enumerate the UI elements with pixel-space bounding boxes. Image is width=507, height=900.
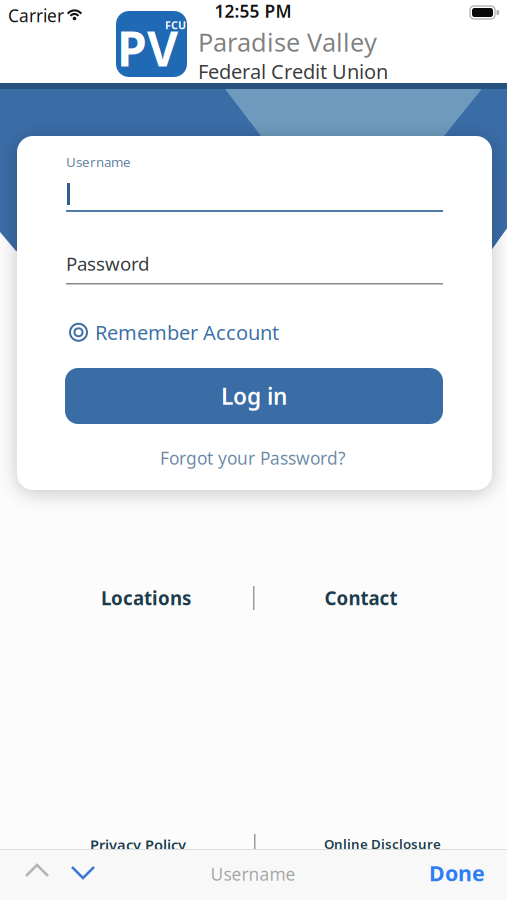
staticText: Carrier — [8, 4, 64, 27]
staticText: Forgot your Password? — [160, 446, 346, 469]
button[interactable]: Done — [429, 859, 485, 887]
staticText: Remember Account — [95, 319, 279, 346]
button[interactable]: Locations — [101, 586, 191, 610]
button[interactable]: Next field — [71, 866, 95, 879]
staticText: Username — [210, 862, 295, 885]
button[interactable]: Privacy Policy — [90, 835, 186, 854]
staticText: 12:55 PM — [214, 0, 291, 22]
button[interactable]: Forgot your Password? — [160, 446, 346, 469]
button[interactable]: Previous field — [25, 864, 49, 877]
staticText: Locations — [101, 586, 191, 610]
staticText: Privacy Policy — [90, 835, 186, 854]
staticText: Paradise Valley — [198, 25, 377, 59]
staticText: Federal Credit Union — [198, 58, 388, 85]
button[interactable]: Log in — [65, 368, 443, 424]
staticText: Log in — [221, 381, 287, 411]
staticText: Password — [66, 251, 149, 276]
button[interactable]: Online Disclosure — [324, 835, 441, 853]
staticText: Username — [66, 153, 131, 171]
staticText: PV — [117, 16, 178, 80]
staticText: Contact — [324, 586, 397, 610]
button[interactable]: Contact — [324, 586, 397, 610]
staticText: Online Disclosure — [324, 835, 441, 853]
staticText: FCU — [165, 18, 186, 32]
button[interactable]: Remember Account — [70, 319, 279, 346]
staticText: Done — [429, 859, 485, 887]
